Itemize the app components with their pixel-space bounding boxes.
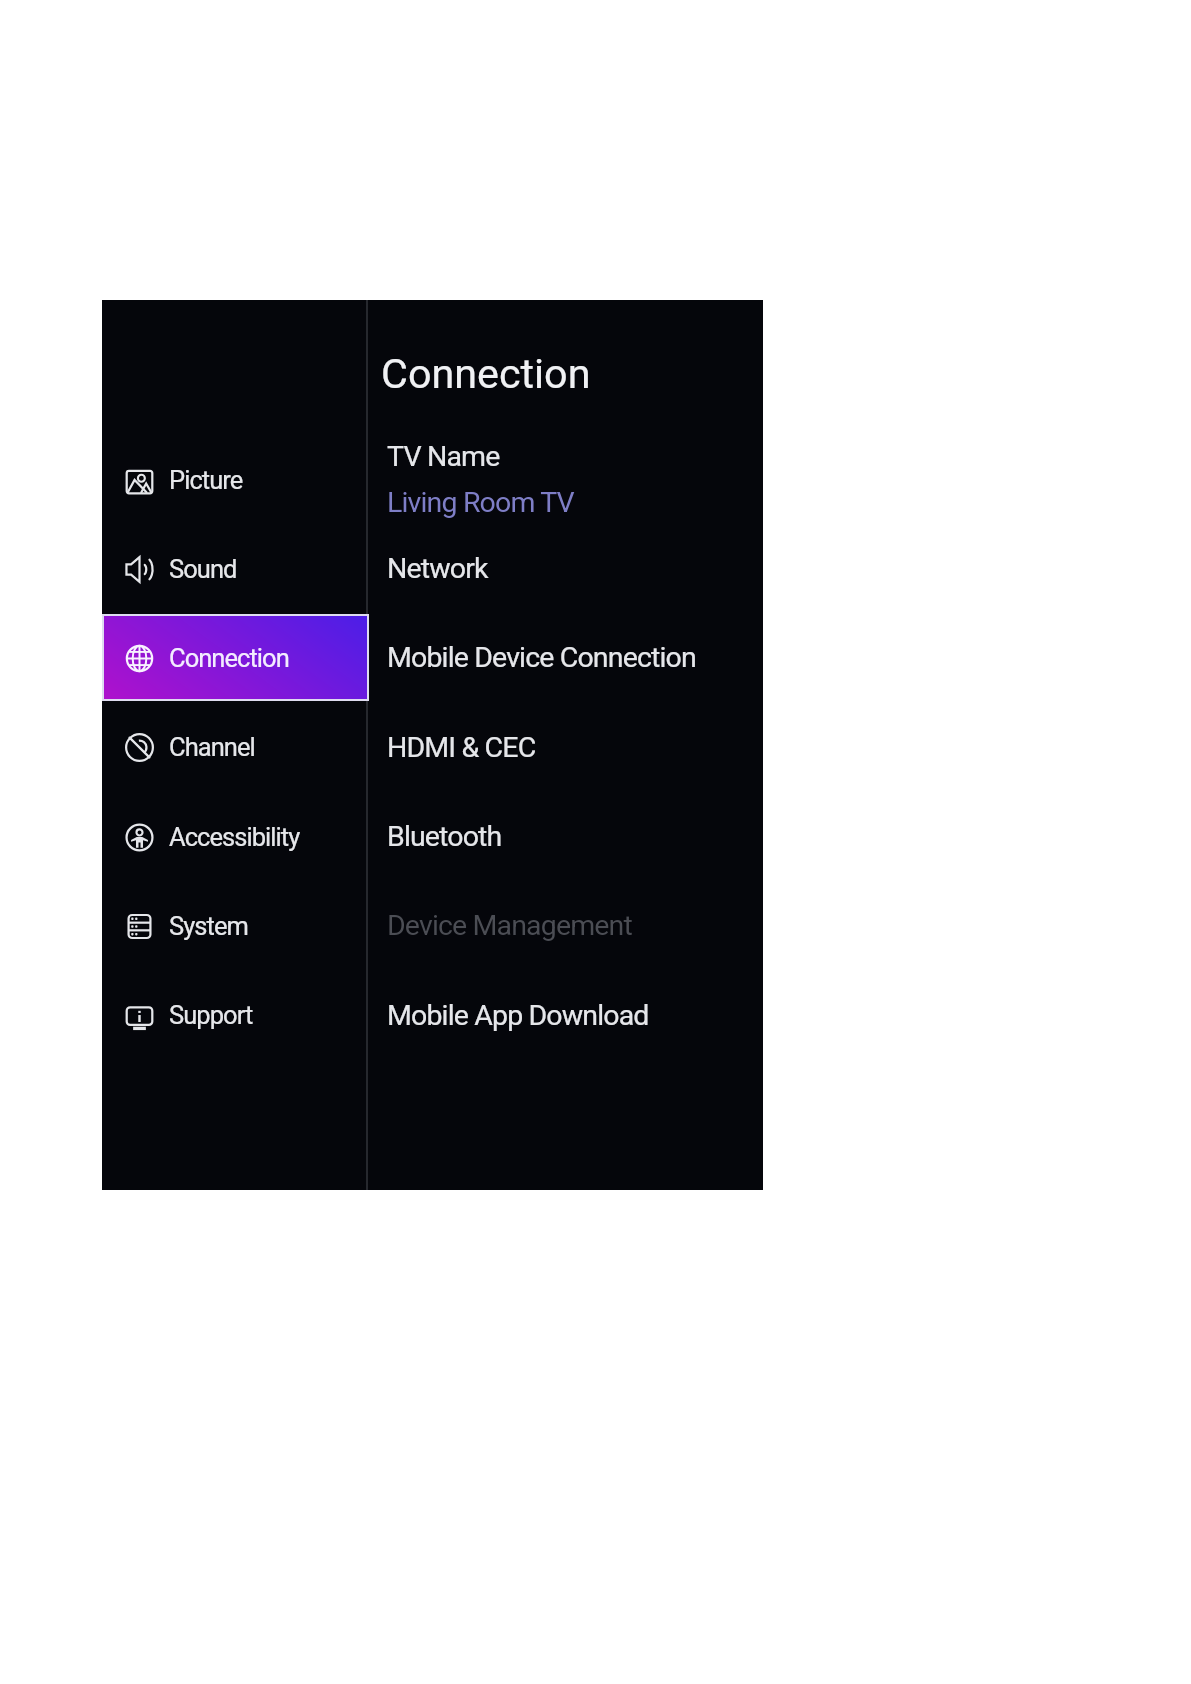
button[interactable]: Network <box>376 525 742 614</box>
button[interactable]: Bluetooth <box>376 793 742 882</box>
staticText: Picture <box>169 465 243 495</box>
button[interactable]: System settings icon <box>102 882 369 969</box>
button[interactable]: Accessibility settings icon <box>102 793 369 880</box>
button[interactable]: Support settings icon <box>102 971 369 1058</box>
other: Picture settings icon <box>125 466 154 495</box>
button[interactable]: TV Name <box>376 435 726 524</box>
staticText: Channel <box>169 732 255 762</box>
button[interactable]: HDMI & CEC <box>376 704 742 793</box>
staticText: Mobile App Download <box>387 999 649 1032</box>
staticText: Accessibility <box>169 822 300 852</box>
staticText: HDMI & CEC <box>387 731 536 764</box>
other: Connection settings icon <box>125 644 154 673</box>
button[interactable]: Picture settings icon <box>102 436 369 523</box>
button[interactable]: Mobile Device Connection <box>376 614 742 703</box>
staticText: Sound <box>169 554 237 584</box>
button[interactable]: Mobile App Download <box>376 972 742 1061</box>
other: Channel settings icon <box>125 733 154 762</box>
button[interactable]: Device Management <box>376 882 742 971</box>
staticText: Connection <box>169 643 289 673</box>
other: Support settings icon <box>125 1001 154 1030</box>
staticText: TV Name <box>387 440 500 473</box>
button[interactable]: Channel settings icon <box>102 703 369 790</box>
button[interactable]: Sound settings icon <box>102 525 369 612</box>
other: Accessibility settings icon <box>125 823 154 852</box>
staticText: Connection <box>381 350 591 398</box>
staticText: Network <box>387 552 488 585</box>
button[interactable]: Connection settings icon <box>102 614 369 701</box>
staticText: System <box>169 911 248 941</box>
staticText: Mobile Device Connection <box>387 641 696 674</box>
staticText: Bluetooth <box>387 820 502 853</box>
other: System settings icon <box>125 912 154 941</box>
staticText: Device Management <box>387 909 632 942</box>
staticText: Living Room TV <box>387 486 574 519</box>
staticText: Support <box>169 1000 253 1030</box>
other: Sound settings icon <box>125 555 154 584</box>
